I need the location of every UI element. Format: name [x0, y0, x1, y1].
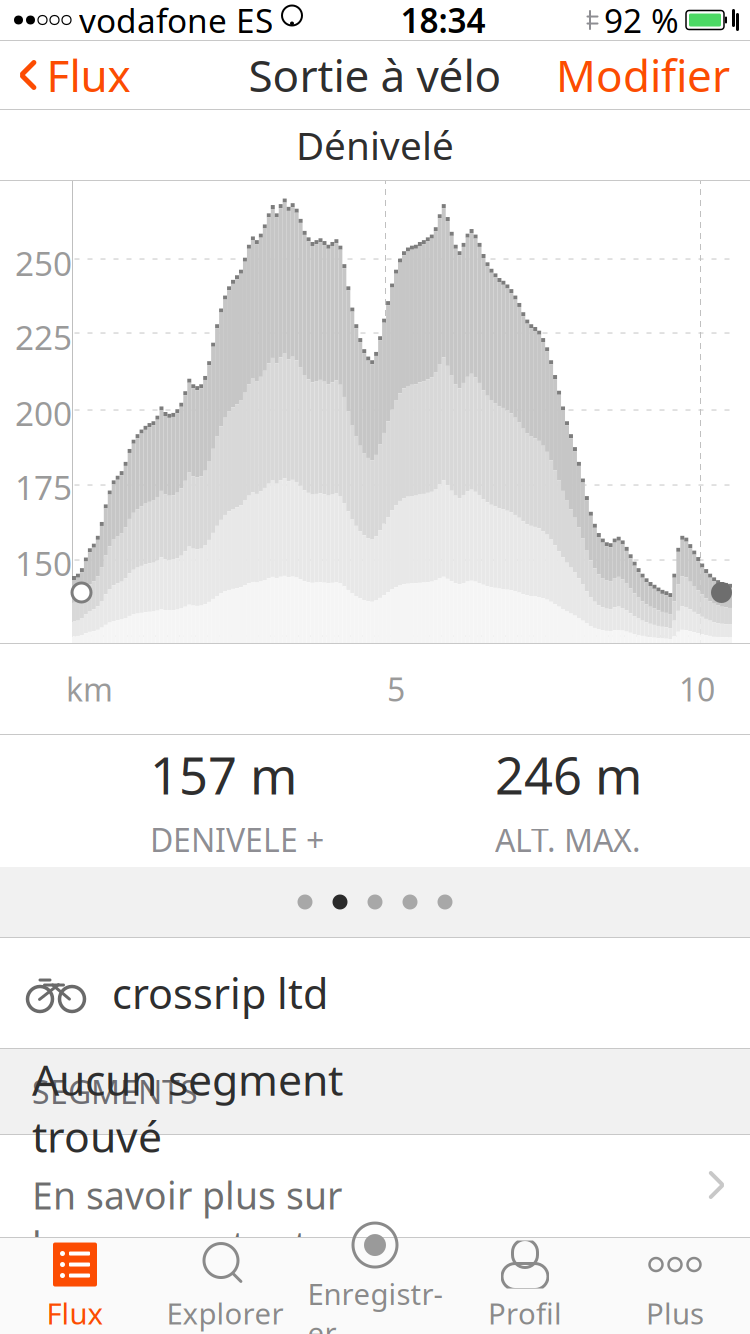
staticText: SEGMENTS: [32, 1070, 198, 1113]
staticText: Explorer: [166, 1293, 283, 1332]
staticText: 175: [15, 465, 72, 509]
staticText: Flux: [46, 46, 130, 104]
button[interactable]: Aucun segment trouvé: [0, 1135, 750, 1235]
staticText: En savoir plus sur les segments et Perfo…: [32, 1170, 342, 1319]
staticText: Flux: [46, 1293, 103, 1332]
staticText: Enregistrer: [307, 1274, 442, 1334]
staticText: 250: [15, 241, 72, 285]
button[interactable]: Profil: [450, 1238, 600, 1334]
staticText: Plus: [646, 1293, 704, 1332]
button[interactable]: Modifier: [544, 41, 750, 109]
staticText: 225: [15, 315, 72, 359]
button[interactable]: Flux: [0, 41, 142, 109]
staticText: vodafone ES: [79, 0, 273, 42]
staticText: 5: [387, 668, 405, 710]
staticText: Sortie à vélo: [248, 46, 501, 104]
staticText: 157 m: [150, 741, 297, 808]
button[interactable]: Flux: [0, 1238, 150, 1334]
button[interactable]: crossrip ltd: [0, 938, 750, 1048]
staticText: ALT. MAX.: [495, 818, 641, 861]
staticText: DENIVELE +: [150, 818, 324, 861]
staticText: 150: [15, 541, 72, 585]
staticText: 10: [679, 668, 715, 710]
button[interactable]: Plus: [600, 1238, 750, 1334]
staticText: Aucun segment trouvé: [32, 1051, 343, 1164]
staticText: Modifier: [556, 46, 730, 104]
staticText: km: [66, 668, 113, 710]
button[interactable]: Explorer: [150, 1238, 300, 1334]
staticText: crossrip ltd: [112, 966, 328, 1020]
staticText: 18:34: [400, 0, 485, 42]
staticText: Profil: [488, 1293, 562, 1332]
button[interactable]: Enregistrer: [300, 1238, 450, 1334]
staticText: 246 m: [495, 741, 642, 808]
staticText: 92 %: [604, 0, 679, 42]
staticText: 200: [15, 391, 72, 435]
staticText: Dénivelé: [296, 119, 454, 171]
